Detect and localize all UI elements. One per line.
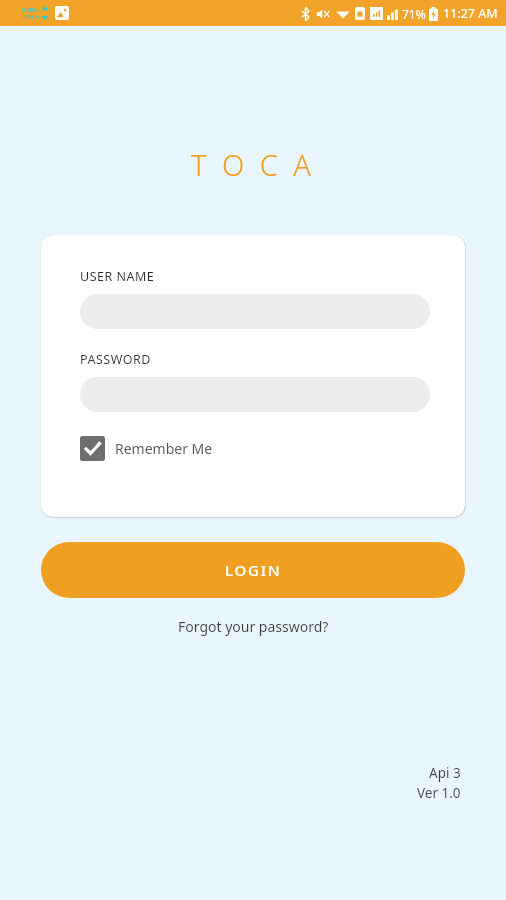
- staticText: Remember Me: [115, 439, 213, 458]
- staticText: Ver 1.0: [417, 784, 461, 802]
- staticText: 11:27 AM: [443, 5, 498, 22]
- staticText: Api 3: [429, 764, 461, 782]
- staticText: T O C A: [191, 145, 315, 184]
- button[interactable]: Forgot your password?: [168, 613, 339, 640]
- staticText: 0.9K/s: [23, 13, 39, 20]
- button[interactable]: Remember Me: [80, 436, 221, 461]
- staticText: USER NAME: [80, 268, 155, 285]
- staticText: 71%: [402, 6, 426, 22]
- staticText: LOGIN: [225, 560, 282, 580]
- button[interactable]: LOGIN: [41, 542, 465, 598]
- staticText: 0.3B/s: [22, 6, 39, 13]
- staticText: PASSWORD: [80, 351, 151, 368]
